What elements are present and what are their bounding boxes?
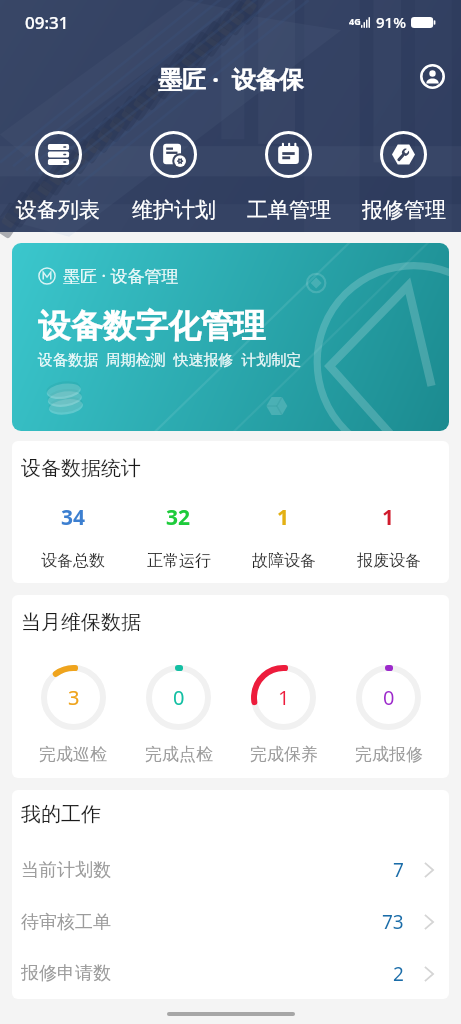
button[interactable]: 34 xyxy=(20,503,126,571)
staticText: 我的工作 xyxy=(21,802,101,827)
staticText: 设备数据 周期检测 快速报修 计划制定 xyxy=(38,349,302,369)
staticText: 当月维保数据 xyxy=(21,610,141,635)
staticText: 7 xyxy=(393,857,404,883)
button[interactable]: 墨匠 · 设备管理 xyxy=(12,243,449,431)
staticText: 0 xyxy=(173,684,185,711)
staticText: 4G xyxy=(349,15,361,27)
staticText: 1 xyxy=(277,503,290,532)
staticText: 2 xyxy=(393,961,404,987)
staticText: 墨匠 · 设备保 xyxy=(158,62,304,95)
staticText: 32 xyxy=(166,503,191,532)
button[interactable]: 维护计划 xyxy=(116,131,231,223)
staticText: 1 xyxy=(382,503,395,532)
staticText: 报修管理 xyxy=(362,197,446,223)
button[interactable]: 1 xyxy=(336,503,441,571)
button[interactable]: 32 xyxy=(126,503,231,571)
button[interactable]: 个人中心 xyxy=(414,58,450,94)
button[interactable]: 3 xyxy=(20,665,126,765)
staticText: 0 xyxy=(383,684,395,711)
button[interactable]: 报修申请数 xyxy=(12,948,449,999)
staticText: 设备数据统计 xyxy=(21,456,141,481)
staticText: 报废设备 xyxy=(357,551,421,571)
staticText: 1 xyxy=(278,684,290,711)
staticText: 09:31 xyxy=(25,11,69,34)
staticText: 当前计划数 xyxy=(21,859,111,882)
staticText: 维护计划 xyxy=(132,197,216,223)
button[interactable]: 1 xyxy=(231,503,336,571)
staticText: 3 xyxy=(68,684,80,711)
staticText: 完成点检 xyxy=(145,744,213,765)
staticText: 正常运行 xyxy=(147,551,211,571)
staticText: 故障设备 xyxy=(252,551,316,571)
staticText: 报修申请数 xyxy=(21,962,111,985)
staticText: 设备总数 xyxy=(41,551,105,571)
button[interactable]: 0 xyxy=(126,665,231,765)
button[interactable]: 设备列表 xyxy=(0,131,116,223)
staticText: 完成巡检 xyxy=(39,744,107,765)
button[interactable]: 待审核工单 xyxy=(12,896,449,948)
button[interactable]: 工单管理 xyxy=(231,131,346,223)
staticText: 完成报修 xyxy=(355,744,423,765)
staticText: 34 xyxy=(61,503,86,532)
staticText: 设备数字化管理 xyxy=(38,306,266,347)
staticText: 73 xyxy=(382,909,404,935)
staticText: 待审核工单 xyxy=(21,911,111,934)
staticText: 完成保养 xyxy=(250,744,318,765)
button[interactable]: 当前计划数 xyxy=(12,844,449,896)
button[interactable]: 0 xyxy=(336,665,441,765)
staticText: 设备列表 xyxy=(16,197,100,223)
button[interactable]: 1 xyxy=(231,665,336,765)
button[interactable]: 报修管理 xyxy=(346,131,461,223)
staticText: 91% xyxy=(376,12,406,32)
staticText: 墨匠 · 设备管理 xyxy=(63,264,179,287)
staticText: 工单管理 xyxy=(247,197,331,223)
